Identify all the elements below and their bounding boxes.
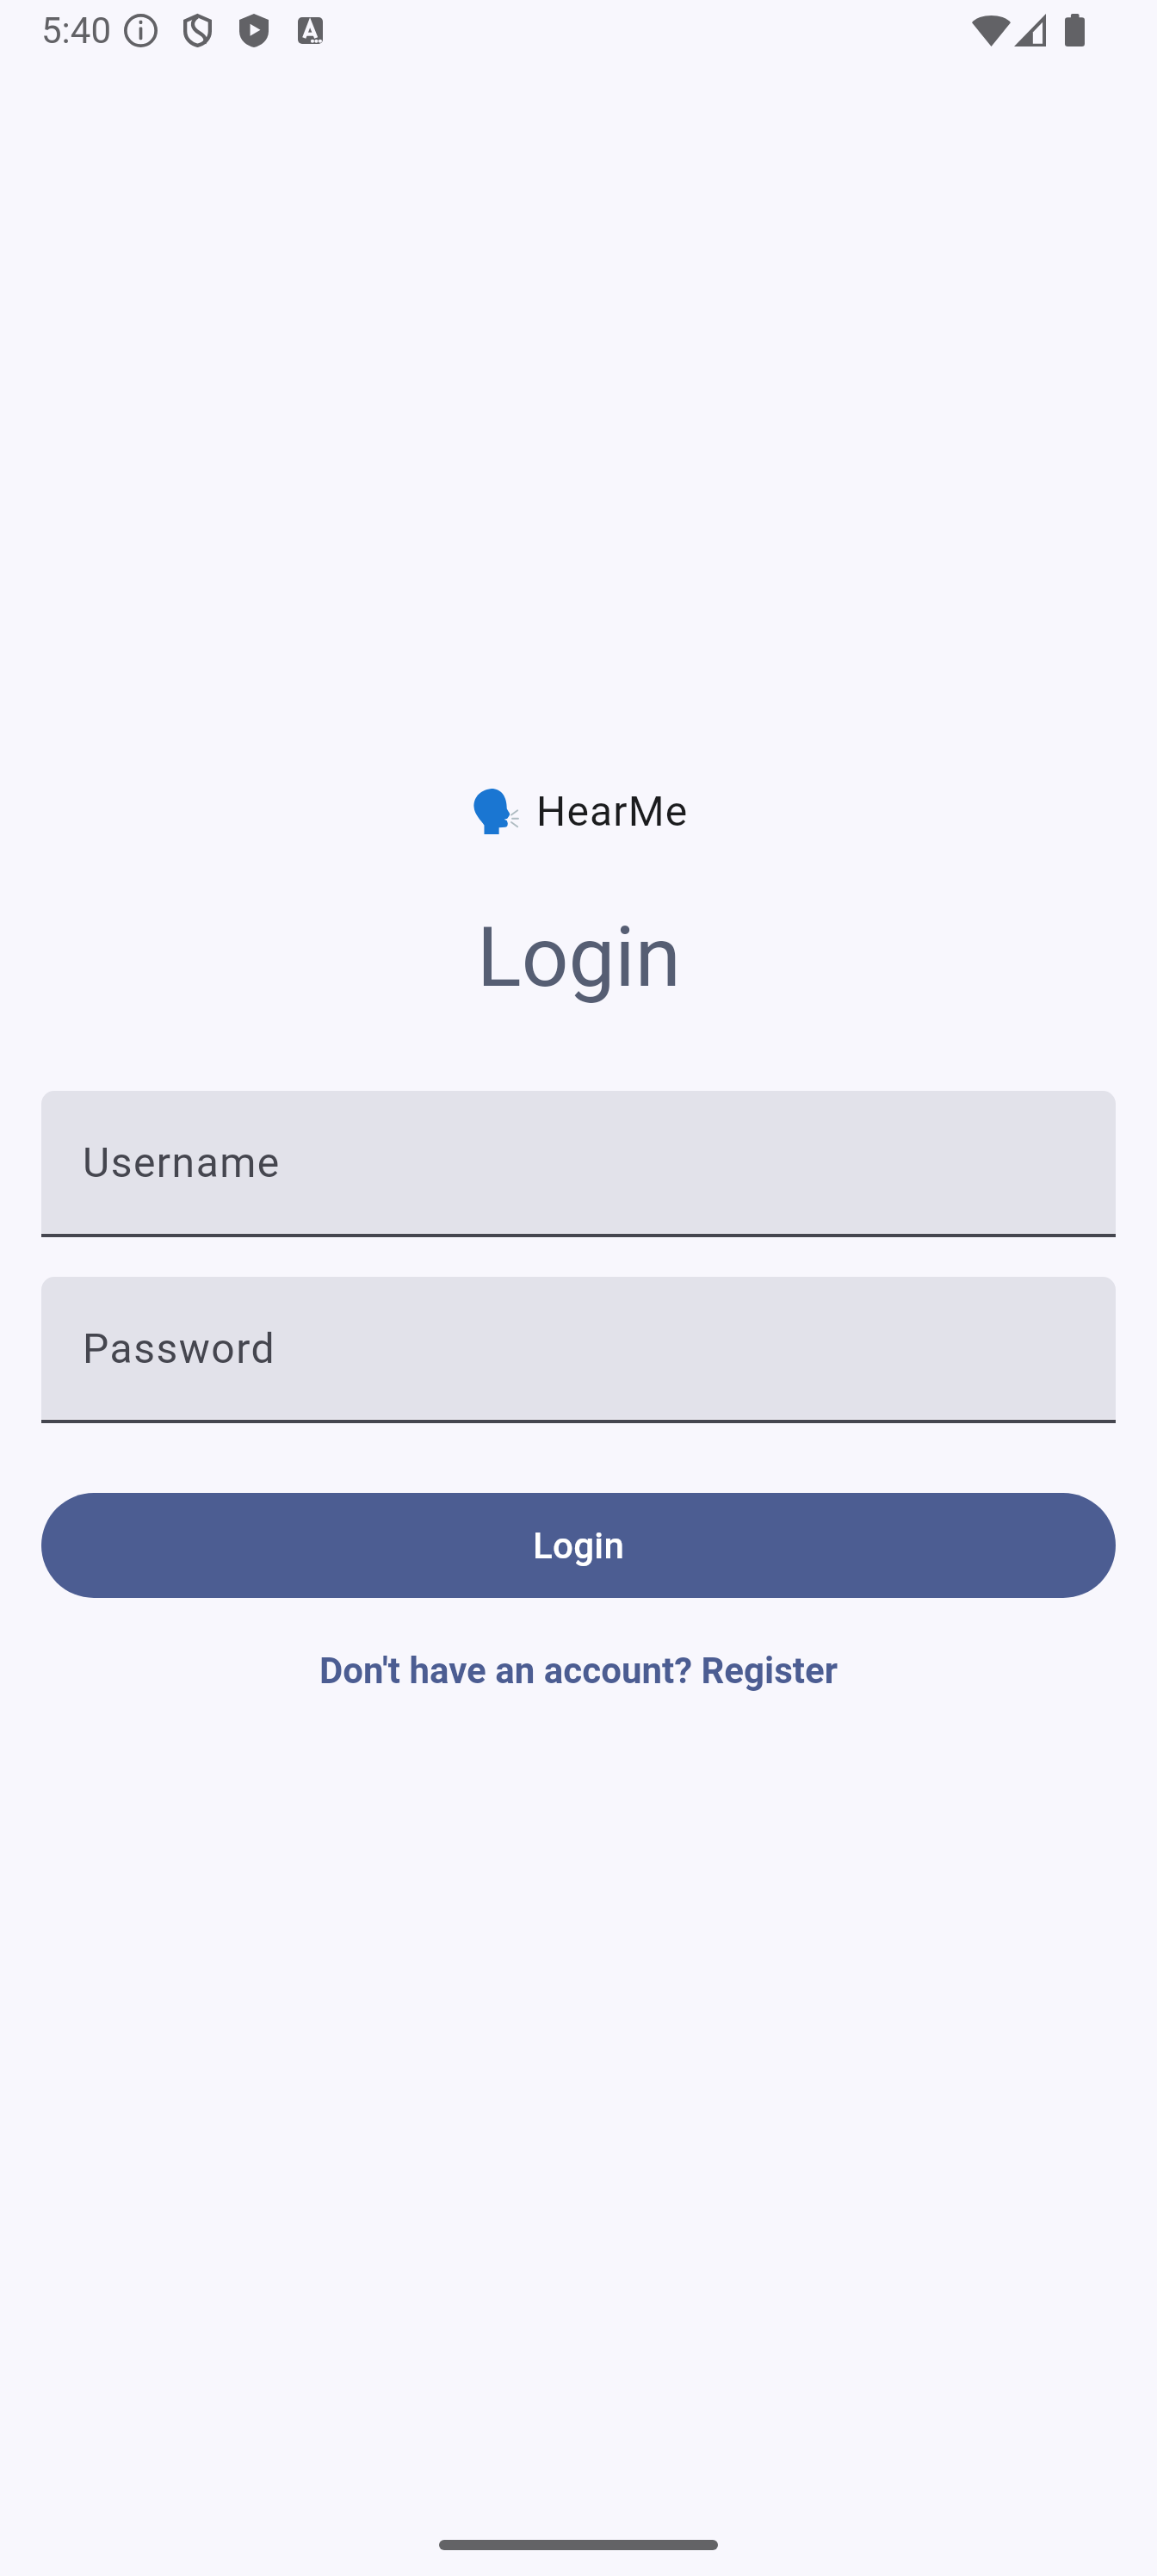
staticText: Username — [83, 1138, 281, 1186]
button[interactable]: Password — [41, 1277, 1116, 1423]
button[interactable]: Login — [41, 1493, 1116, 1598]
staticText: Login — [477, 909, 681, 1006]
staticText: Password — [83, 1324, 276, 1372]
staticText: HearMe — [536, 787, 689, 835]
button[interactable]: Username — [41, 1091, 1116, 1237]
staticText: Don't have an account? Register — [319, 1650, 838, 1692]
other: HearMe logo — [473, 789, 518, 834]
staticText: 5:40 — [41, 9, 111, 52]
staticText: Login — [533, 1525, 625, 1567]
button[interactable]: Don't have an account? Register — [299, 1634, 858, 1707]
